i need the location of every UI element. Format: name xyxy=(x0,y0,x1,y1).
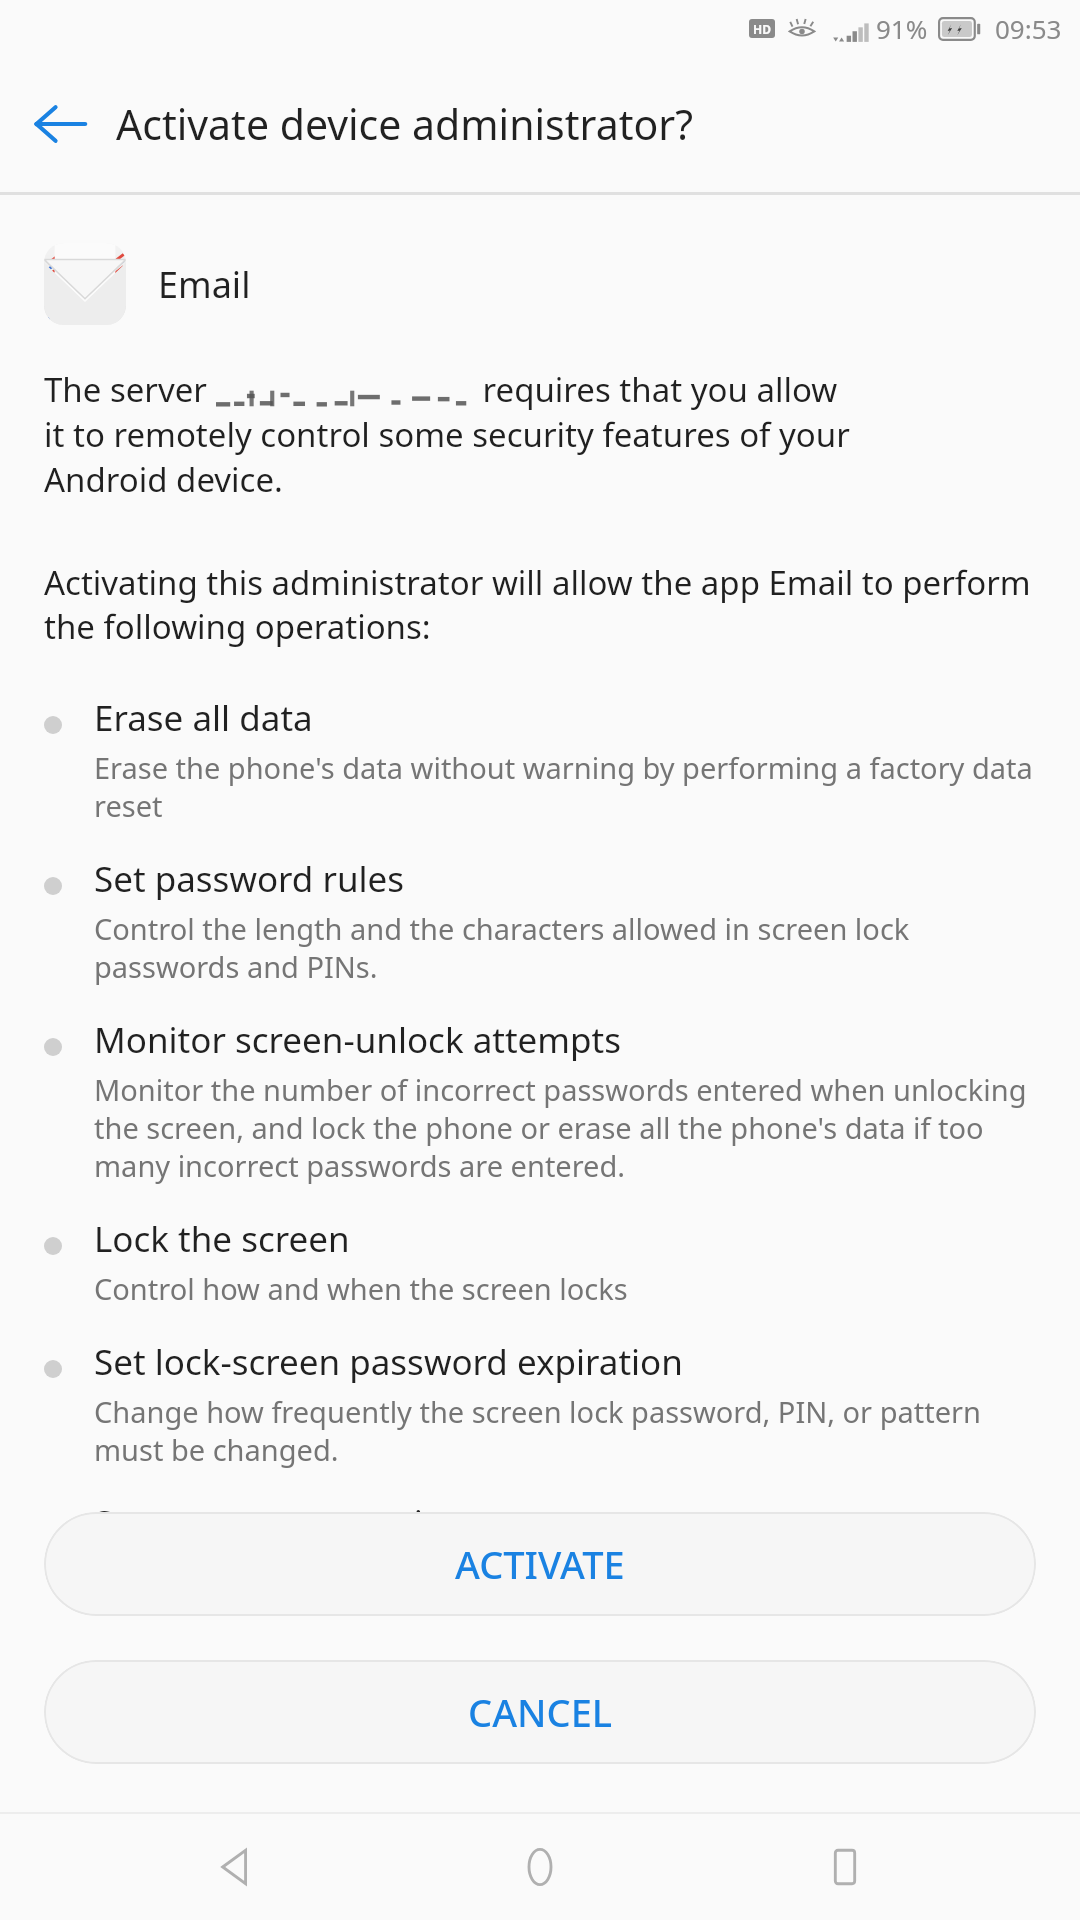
staticText: Erase the phone's data without warning b… xyxy=(94,748,1040,825)
staticText: CANCEL xyxy=(468,1686,613,1738)
button[interactable]: CANCEL xyxy=(44,1660,1036,1764)
staticText: requires that you allow xyxy=(474,367,838,412)
staticText: Monitor screen-unlock attempts xyxy=(94,1016,621,1064)
staticText: Activate device administrator? xyxy=(116,96,693,152)
staticText: Monitor the number of incorrect password… xyxy=(94,1070,1040,1185)
staticText: Control the length and the characters al… xyxy=(94,909,1040,986)
staticText: Change how frequently the screen lock pa… xyxy=(94,1392,1040,1469)
staticText: Erase all data xyxy=(94,694,313,742)
staticText: HD xyxy=(753,21,771,37)
staticText: Email xyxy=(158,260,251,309)
staticText: ACTIVATE xyxy=(455,1538,625,1590)
staticText: Android device. xyxy=(44,457,283,502)
staticText: Activating this administrator will allow… xyxy=(44,560,1040,648)
staticText: 09:53 xyxy=(995,11,1062,46)
button[interactable]: Recents xyxy=(775,1814,915,1920)
staticText: Set password rules xyxy=(94,855,405,903)
button[interactable]: ACTIVATE xyxy=(44,1512,1036,1616)
staticText: Set storage encryption xyxy=(94,1499,466,1512)
button[interactable]: Back xyxy=(165,1814,305,1920)
staticText: Lock the screen xyxy=(94,1215,350,1263)
staticText: 91% xyxy=(876,11,928,46)
staticText: it to remotely control some security fea… xyxy=(44,412,850,457)
staticText: Control how and when the screen locks xyxy=(94,1269,628,1308)
button[interactable]: Back xyxy=(24,88,96,160)
staticText: Set lock-screen password expiration xyxy=(94,1338,683,1386)
button[interactable]: Home xyxy=(470,1814,610,1920)
staticText: The server xyxy=(44,367,216,412)
